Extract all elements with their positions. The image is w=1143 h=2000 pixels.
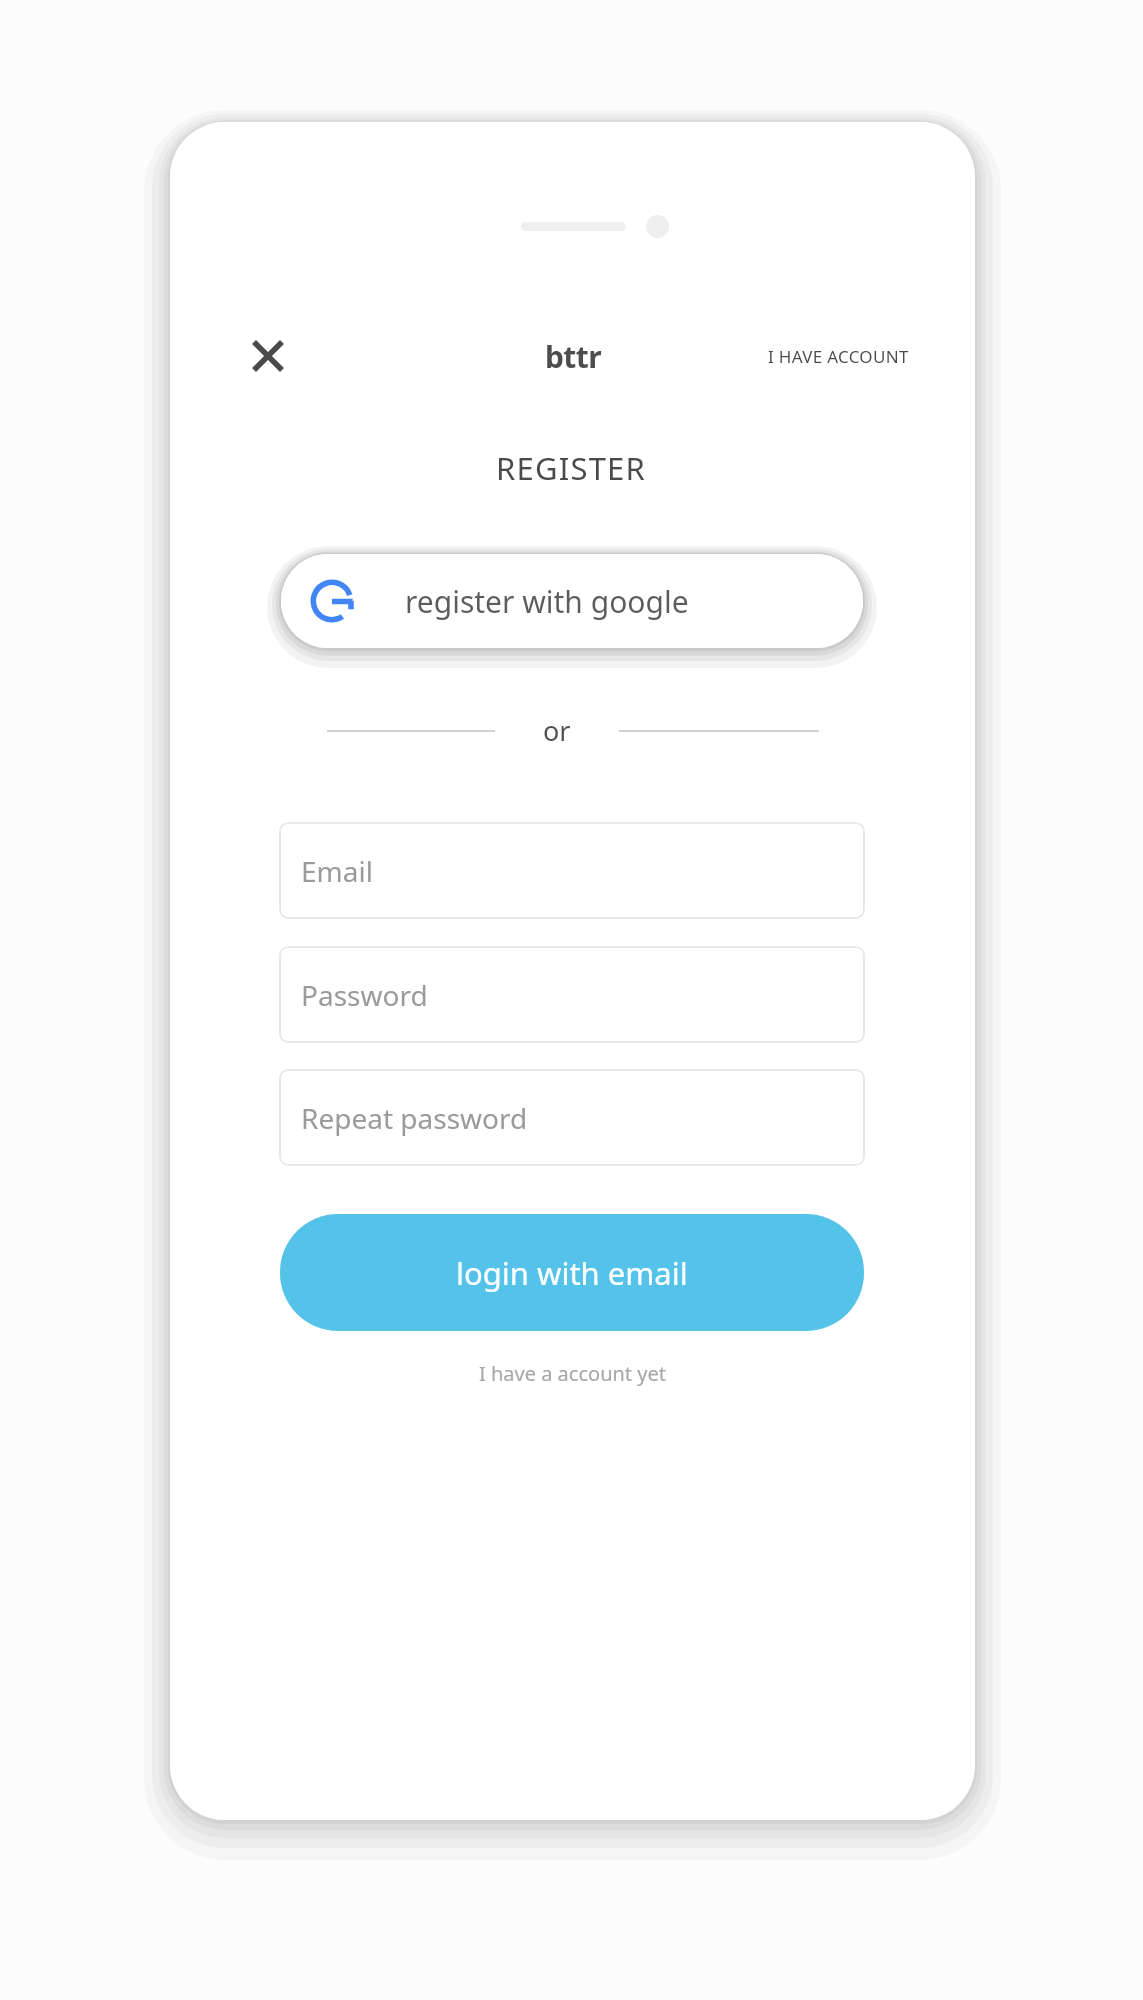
staticText: Email	[301, 852, 373, 890]
staticText: I HAVE ACCOUNT	[768, 345, 909, 368]
button[interactable]: Repeat password	[279, 1069, 865, 1166]
staticText: register with google	[405, 581, 689, 622]
button[interactable]: Close	[232, 320, 304, 392]
staticText: Password	[301, 976, 428, 1014]
button[interactable]: Email	[279, 822, 865, 919]
staticText: login with email	[456, 1252, 688, 1294]
button[interactable]: I have a account yet	[467, 1352, 678, 1395]
button[interactable]: register with google	[281, 554, 863, 648]
button[interactable]: I HAVE ACCOUNT	[762, 335, 915, 378]
staticText: or	[543, 712, 571, 749]
button[interactable]: login with email	[280, 1214, 864, 1331]
staticText: bttr	[545, 336, 602, 377]
button[interactable]: Password	[279, 946, 865, 1043]
staticText: Repeat password	[301, 1099, 528, 1137]
staticText: I have a account yet	[479, 1360, 666, 1387]
staticText: REGISTER	[496, 447, 646, 489]
